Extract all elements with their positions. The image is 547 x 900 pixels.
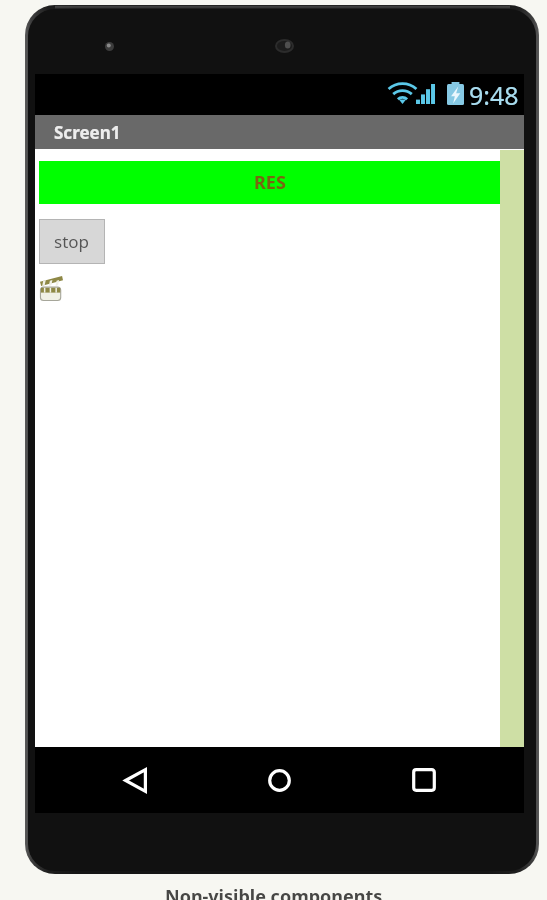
button[interactable]: stop bbox=[39, 219, 105, 264]
staticText: stop bbox=[54, 230, 90, 253]
button[interactable]: Back bbox=[35, 747, 235, 813]
button[interactable]: Recents bbox=[324, 747, 524, 813]
staticText: Screen1 bbox=[54, 121, 121, 144]
staticText: RES bbox=[254, 170, 286, 195]
button[interactable]: RES bbox=[39, 161, 500, 204]
button[interactable]: Home bbox=[235, 747, 324, 813]
button[interactable]: Player bbox=[40, 277, 63, 301]
staticText: Non-visible components bbox=[165, 884, 383, 900]
staticText: 9:48 bbox=[469, 78, 519, 112]
